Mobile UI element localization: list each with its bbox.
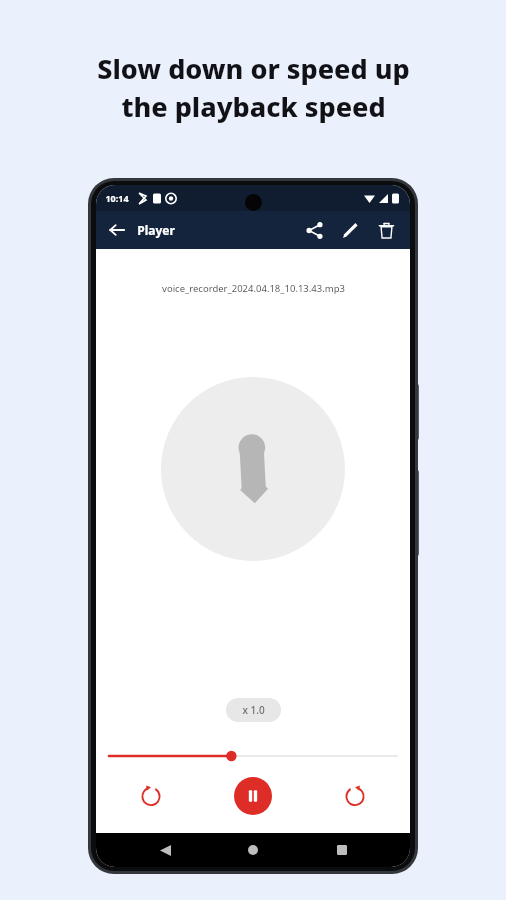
staticText: voice_recorder_2024.04.18_10.13.43.mp3 (162, 282, 345, 295)
button[interactable]: Rewind 5 seconds (129, 774, 173, 818)
button[interactable]: Edit (332, 212, 368, 248)
button[interactable]: Pause (234, 777, 272, 815)
button[interactable]: Back (145, 833, 185, 867)
button[interactable]: Back (100, 213, 134, 247)
button[interactable]: Share (296, 212, 332, 248)
staticText: 10:14 (105, 192, 129, 204)
button[interactable] (96, 747, 410, 765)
staticText: x 1.0 (242, 703, 265, 717)
button[interactable]: Recording artwork (161, 377, 345, 561)
staticText: Slow down or speed up (97, 50, 410, 87)
button[interactable]: Home (233, 833, 273, 867)
button[interactable]: Recent apps (322, 833, 362, 867)
button[interactable]: Forward 5 seconds (333, 774, 377, 818)
button[interactable]: Delete (368, 212, 404, 248)
button[interactable]: x 1.0 (226, 698, 281, 722)
staticText: Player (137, 222, 175, 238)
staticText: the playback speed (121, 88, 386, 125)
